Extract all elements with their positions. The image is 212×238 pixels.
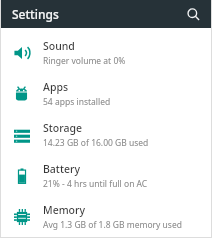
button[interactable]: Sound bbox=[0, 32, 212, 73]
button[interactable]: Memory bbox=[0, 196, 212, 237]
button[interactable]: Search bbox=[182, 3, 204, 25]
staticText: Ringer volume at 0% bbox=[43, 55, 126, 67]
button[interactable]: Apps bbox=[0, 73, 212, 114]
staticText: 54 apps installed bbox=[43, 96, 111, 108]
staticText: Storage bbox=[43, 121, 82, 135]
staticText: 14.23 GB of 16.00 GB used bbox=[43, 137, 149, 149]
staticText: Settings bbox=[12, 6, 59, 22]
staticText: Memory bbox=[43, 203, 86, 217]
staticText: Avg 1.3 GB of 1.8 GB memory used bbox=[43, 219, 182, 231]
staticText: Apps bbox=[43, 80, 69, 94]
staticText: Sound bbox=[43, 39, 75, 53]
button[interactable]: Storage bbox=[0, 114, 212, 155]
button[interactable]: Battery bbox=[0, 155, 212, 196]
staticText: 21% - 4 hrs until full on AC bbox=[43, 178, 148, 190]
staticText: Battery bbox=[43, 162, 80, 176]
